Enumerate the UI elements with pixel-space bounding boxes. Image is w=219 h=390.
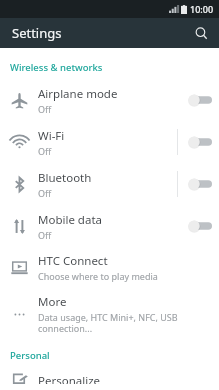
staticText: Wi-Fi bbox=[38, 128, 65, 144]
button[interactable]: Mobile data toggle bbox=[178, 211, 219, 241]
staticText: Data usage, HTC Mini+, NFC, USB connecti… bbox=[38, 311, 203, 334]
button[interactable]: Bluetooth bbox=[0, 163, 219, 205]
staticText: HTC Connect bbox=[38, 253, 108, 269]
staticText: Off bbox=[38, 145, 52, 157]
staticText: Choose where to play media bbox=[38, 270, 158, 282]
staticText: Bluetooth bbox=[38, 170, 92, 186]
staticText: Wireless & networks bbox=[10, 61, 103, 74]
staticText: Off bbox=[38, 187, 52, 199]
button[interactable]: Personalize bbox=[0, 367, 219, 390]
staticText: Off bbox=[38, 229, 52, 241]
staticText: Airplane mode bbox=[38, 86, 118, 102]
staticText: More bbox=[38, 294, 67, 310]
button[interactable]: Airplane mode bbox=[0, 79, 219, 121]
staticText: Settings bbox=[12, 24, 62, 42]
staticText: Personalize bbox=[38, 373, 101, 384]
button[interactable]: Search bbox=[188, 20, 214, 46]
button[interactable]: Bluetooth toggle bbox=[178, 169, 219, 199]
button[interactable]: Mobile data bbox=[0, 205, 219, 247]
staticText: 10:00 bbox=[190, 3, 214, 15]
staticText: Personal bbox=[10, 349, 50, 362]
button[interactable]: More bbox=[0, 288, 219, 340]
button[interactable]: Wi-Fi bbox=[0, 121, 219, 163]
staticText: Off bbox=[38, 103, 52, 115]
button[interactable]: Airplane mode toggle bbox=[178, 85, 219, 115]
button[interactable]: Wi-Fi toggle bbox=[178, 127, 219, 157]
staticText: Mobile data bbox=[38, 212, 102, 228]
button[interactable]: HTC Connect bbox=[0, 247, 219, 288]
